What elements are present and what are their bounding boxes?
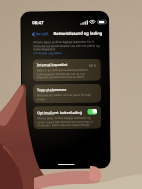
staticText: Batteritilstand og lading — [53, 31, 102, 36]
staticText: Optimalisert batterilading — [37, 110, 82, 115]
staticText: Dette er en måling av batterikapasiteten… — [37, 68, 97, 78]
staticText: iPhone lærer av dine daglige ladevaner o… — [37, 116, 97, 126]
button[interactable]: Om batteri og ytelse — [34, 51, 62, 55]
staticText: Om batteri og ytelse — [34, 51, 62, 55]
staticText: 88 % — [89, 63, 97, 67]
button[interactable]: Optimalisert batterilading — [87, 109, 97, 115]
staticText: Topp ytelsesevne — [37, 87, 67, 92]
staticText: 08:47 — [32, 19, 44, 25]
staticText: Innstill. — [35, 31, 49, 36]
button[interactable]: Optimalisert batterilading — [33, 106, 101, 129]
staticText: iPhone lærer av dine daglige ladevaner f… — [33, 40, 100, 51]
button[interactable]: Internal kapasitet — [33, 59, 101, 81]
staticText: Batteriet ditt støtter normal ytelse for… — [37, 93, 97, 100]
staticText: Internal kapasitet — [37, 62, 68, 67]
button[interactable]: Innstill. — [30, 31, 50, 36]
button[interactable]: Topp ytelsesevne — [33, 84, 101, 103]
